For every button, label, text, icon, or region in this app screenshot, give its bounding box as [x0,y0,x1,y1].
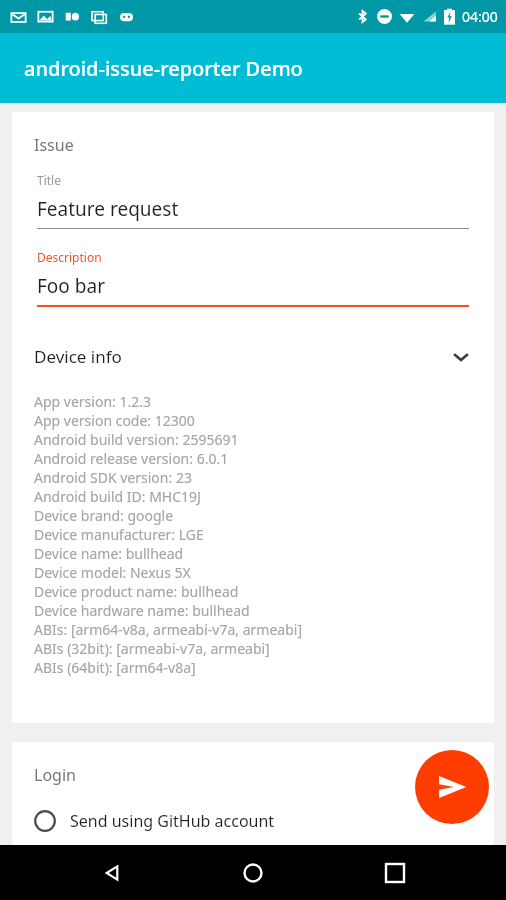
staticText: ABIs (64bit): [arm64-v8a] [34,658,196,677]
button[interactable]: Send using GitHub account [12,808,494,836]
staticText: Login [34,764,76,786]
button[interactable]: Send report [415,750,489,824]
staticText: Description [37,249,102,265]
staticText: Android build ID: MHC19J [34,487,201,506]
button[interactable]: Home [223,845,283,900]
staticText: Foo bar [37,273,105,299]
button[interactable]: Title [37,172,469,229]
staticText: Issue [34,134,74,156]
staticText: android-issue-reporter Demo [24,55,303,82]
button[interactable]: Recent apps [365,845,425,900]
staticText: Android release version: 6.0.1 [34,449,229,468]
staticText: ABIs: [arm64-v8a, armeabi-v7a, armeabi] [34,620,302,639]
staticText: Device name: bullhead [34,544,184,563]
staticText: Device hardware name: bullhead [34,601,250,620]
button[interactable]: Description [37,249,469,307]
staticText: Feature request [37,196,179,222]
staticText: Title [37,172,61,188]
staticText: Android build version: 2595691 [34,430,239,449]
staticText: Device manufacturer: LGE [34,525,204,544]
staticText: ABIs (32bit): [armeabi-v7a, armeabi] [34,639,270,658]
staticText: Send using GitHub account [70,810,275,832]
staticText: Device product name: bullhead [34,582,239,601]
staticText: App version code: 12300 [34,411,195,430]
staticText: Device brand: google [34,506,174,525]
staticText: App version: 1.2.3 [34,392,151,411]
button[interactable]: Back [82,845,142,900]
staticText: Device model: Nexus 5X [34,563,191,582]
staticText: 04:00 [462,7,498,26]
button[interactable]: Device info [12,341,494,372]
staticText: Android SDK version: 23 [34,468,192,487]
staticText: Device info [34,345,122,368]
